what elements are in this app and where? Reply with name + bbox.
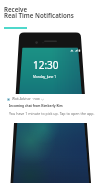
staticText: You have 1 minute to pick up. Tap to ope…: [9, 111, 95, 116]
staticText: Incoming chat from Kimberly Kim: [9, 104, 63, 108]
staticText: 12:30: [33, 58, 59, 72]
button[interactable]: Wait-Advisor · now: [4, 94, 100, 123]
staticText: Wait-Advisor · now: [12, 97, 40, 101]
staticText: Monday, June 1: [33, 75, 56, 79]
staticText: Receive: [4, 5, 28, 13]
staticText: Real Time Notifications: [4, 11, 74, 19]
